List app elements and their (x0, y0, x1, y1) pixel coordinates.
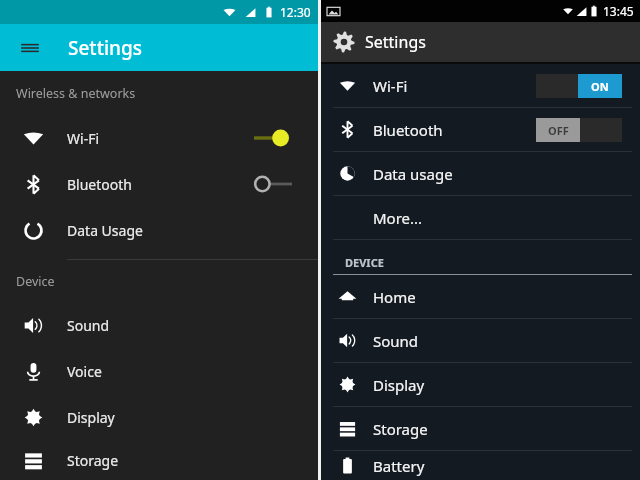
button[interactable]: Menu (14, 32, 46, 64)
button[interactable]: Storage (321, 407, 640, 450)
staticText: Wireless & networks (16, 85, 136, 102)
staticText: ON (591, 79, 609, 94)
staticText: More... (373, 208, 423, 228)
staticText: DEVICE (345, 255, 384, 270)
button[interactable]: Storage (0, 440, 318, 480)
staticText: Bluetooth (373, 120, 443, 140)
button[interactable]: Bluetooth (0, 161, 318, 207)
button[interactable]: Wi-Fi (0, 115, 318, 161)
button[interactable]: Display (321, 363, 640, 406)
staticText: OFF (548, 123, 569, 138)
staticText: 13:45 (603, 3, 634, 19)
staticText: Sound (373, 331, 419, 351)
button[interactable]: Voice (0, 348, 318, 394)
staticText: Device (16, 273, 55, 290)
staticText: Display (67, 408, 115, 427)
button[interactable]: Wi-Fi (321, 64, 640, 107)
staticText: Wi-Fi (67, 129, 100, 148)
button[interactable]: Sound (321, 319, 640, 362)
staticText: 12:30 (280, 4, 311, 20)
button[interactable]: Battery (321, 451, 640, 480)
staticText: Voice (67, 362, 102, 381)
staticText: Settings (365, 31, 426, 53)
staticText: Wi-Fi (373, 76, 408, 96)
button[interactable]: OFF (536, 118, 622, 142)
button[interactable]: Data Usage (0, 207, 318, 253)
staticText: Data usage (373, 164, 453, 184)
staticText: Battery (373, 456, 425, 476)
button[interactable]: More... (321, 196, 640, 239)
staticText: Display (373, 375, 425, 395)
staticText: Sound (67, 316, 110, 335)
staticText: Data Usage (67, 221, 143, 240)
button[interactable]: Sound (0, 302, 318, 348)
staticText: Home (373, 287, 416, 307)
button[interactable]: Bluetooth (321, 108, 640, 151)
button[interactable]: Display (0, 394, 318, 440)
button[interactable]: Data usage (321, 152, 640, 195)
staticText: Settings (68, 35, 142, 61)
button[interactable]: ON (536, 74, 622, 98)
button[interactable]: Home (321, 275, 640, 318)
staticText: Bluetooth (67, 175, 132, 194)
staticText: Storage (373, 419, 428, 439)
staticText: Storage (67, 451, 119, 470)
